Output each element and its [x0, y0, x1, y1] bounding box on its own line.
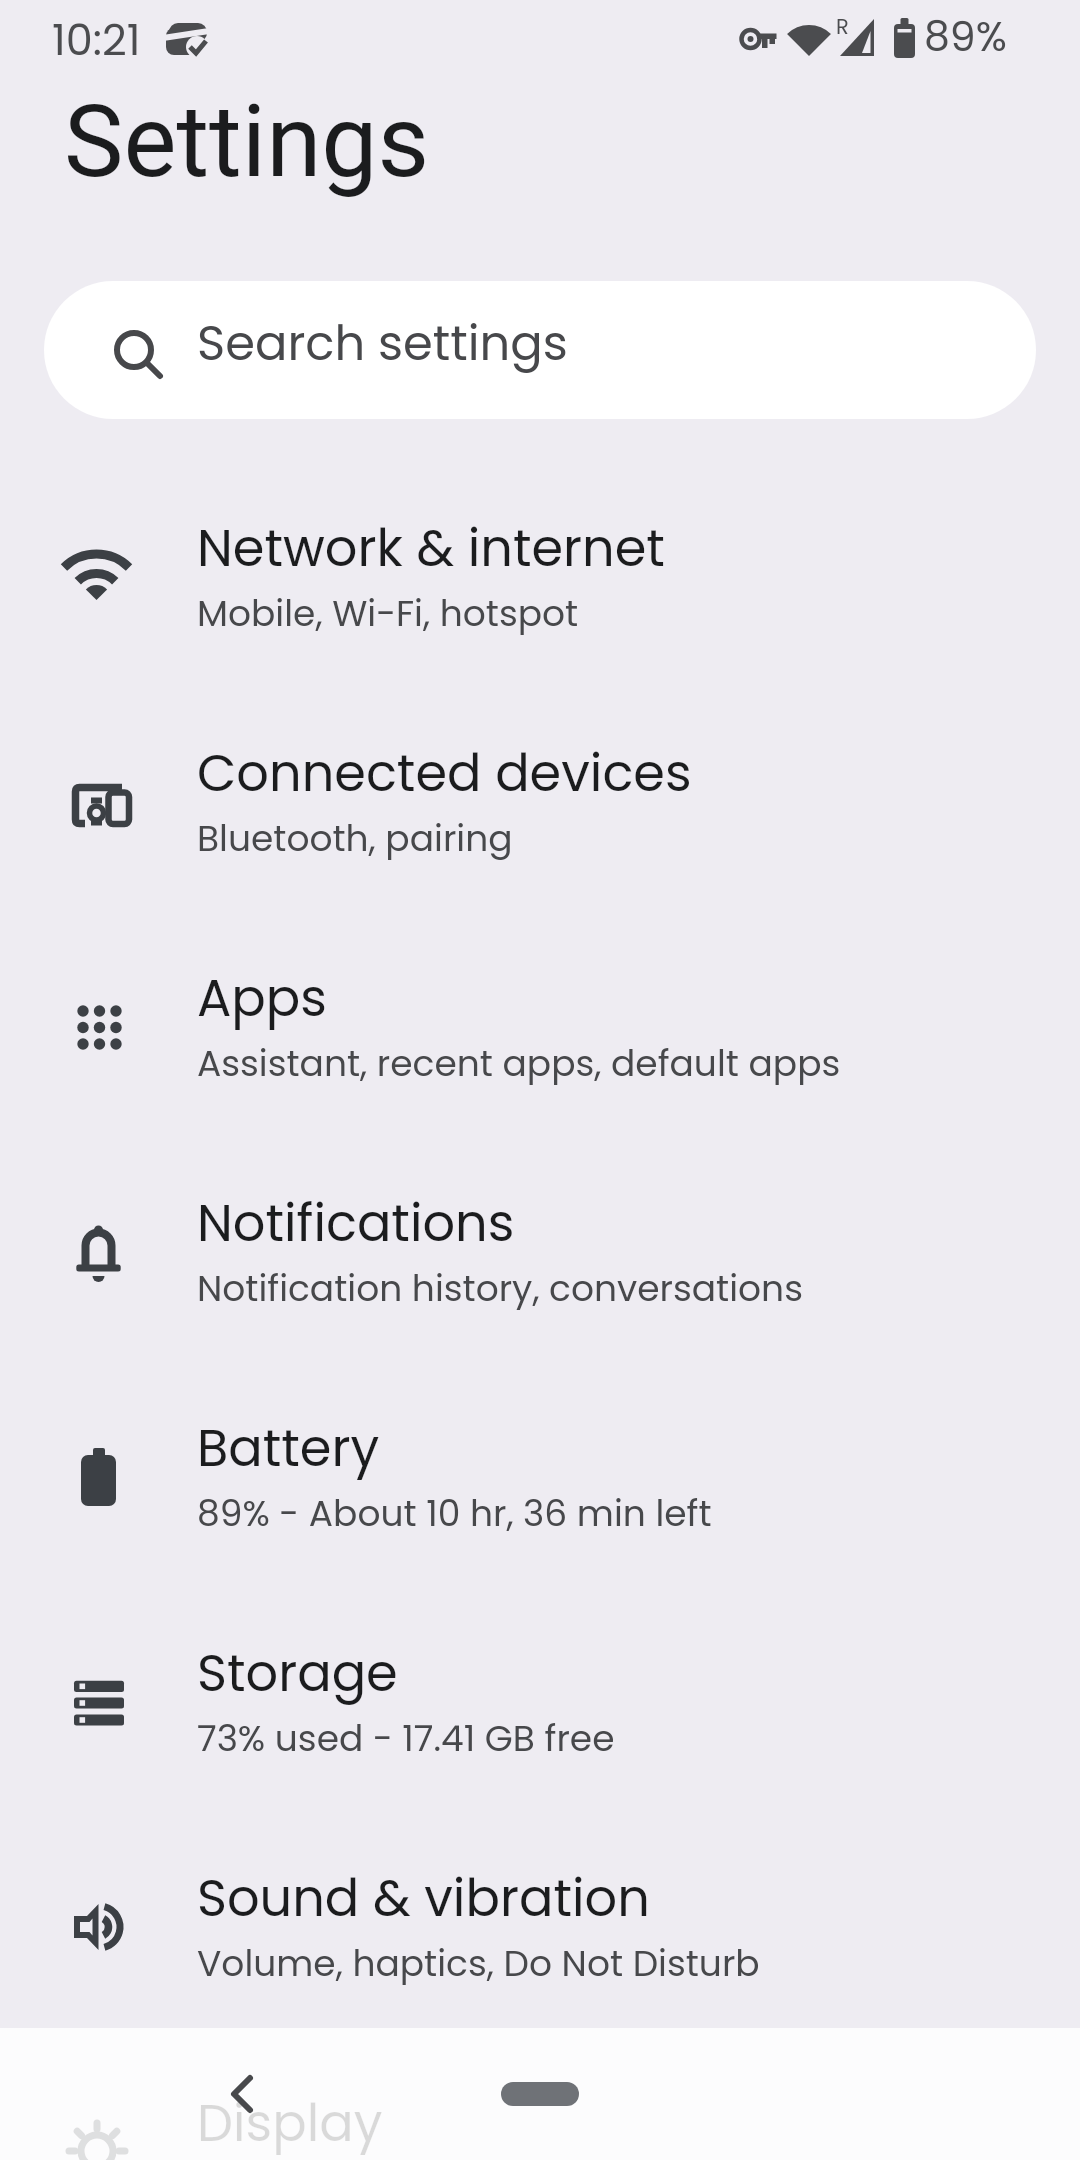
staticText: Storage [197, 1637, 398, 1708]
button[interactable]: Apps [0, 920, 1080, 1145]
staticText: Sound & vibration [197, 1862, 650, 1933]
staticText: Assistant, recent apps, default apps [197, 1038, 841, 1088]
button[interactable]: Search settings [44, 281, 1036, 419]
button[interactable] [501, 2082, 579, 2106]
button[interactable]: Storage [0, 1595, 1080, 1820]
button[interactable]: Notifications [0, 1145, 1080, 1370]
staticText: 89% [924, 8, 1007, 65]
staticText: 10:21 [52, 10, 141, 70]
staticText: 73% used - 17.41 GB free [197, 1713, 615, 1763]
staticText: Network & internet [197, 512, 665, 583]
button[interactable]: Battery [0, 1370, 1080, 1595]
button[interactable]: Connected devices [0, 695, 1080, 920]
button[interactable]: Network & internet [0, 470, 1080, 695]
staticText: R [836, 12, 849, 41]
button[interactable]: Sound & vibration [0, 1820, 1080, 2045]
staticText: Search settings [197, 310, 568, 377]
staticText: Display [197, 2087, 383, 2158]
staticText: Mobile, Wi-Fi, hotspot [197, 588, 579, 638]
button[interactable]: Display [0, 2045, 1080, 2160]
staticText: Notification history, conversations [197, 1263, 803, 1313]
staticText: Volume, haptics, Do Not Disturb [197, 1938, 760, 1988]
staticText: 89% - About 10 hr, 36 min left [197, 1488, 712, 1538]
staticText: Notifications [197, 1187, 515, 1258]
staticText: Bluetooth, pairing [197, 813, 513, 863]
staticText: Apps [197, 962, 327, 1033]
staticText: Connected devices [197, 737, 692, 808]
staticText: Settings [64, 83, 430, 200]
staticText: Battery [197, 1412, 380, 1483]
